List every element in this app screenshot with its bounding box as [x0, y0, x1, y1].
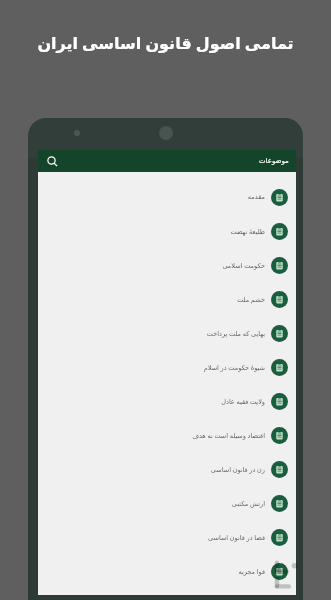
button[interactable]: زن در قانون اساسی [38, 452, 296, 486]
button[interactable]: طلیعهٔ نهضت [38, 214, 296, 248]
button[interactable]: مقدمه [38, 180, 296, 214]
staticText: بهایی که ملت پرداخت [206, 329, 265, 338]
staticText: طلیعهٔ نهضت [230, 227, 265, 236]
staticText: ولایت فقیه عادل [221, 397, 265, 406]
button[interactable]: Search [43, 152, 61, 170]
button[interactable]: خشم ملت [38, 282, 296, 316]
staticText: قضا در قانون اساسی [208, 533, 265, 542]
staticText: ارتش مکتبی [231, 499, 265, 508]
button[interactable]: ولایت فقیه عادل [38, 384, 296, 418]
staticText: زن در قانون اساسی [210, 465, 265, 474]
staticText: تمامی اصول قانون اساسی ایران [37, 32, 294, 54]
button[interactable]: شیوهٔ حکومت در اسلام [38, 350, 296, 384]
staticText: مقدمه [247, 193, 265, 201]
staticText: قوا مجریه [238, 567, 265, 576]
staticText: موضوعات [259, 157, 289, 165]
button[interactable]: اقتصاد وسیله است نه هدف [38, 418, 296, 452]
button[interactable]: ارتش مکتبی [38, 486, 296, 520]
staticText: اقتصاد وسیله است نه هدف [192, 431, 265, 440]
staticText: شیوهٔ حکومت در اسلام [203, 363, 265, 372]
staticText: خشم ملت [237, 295, 265, 304]
button[interactable]: قوا مجریه [38, 554, 296, 588]
button[interactable]: حکومت اسلامی [38, 248, 296, 282]
button[interactable]: قضا در قانون اساسی [38, 520, 296, 554]
staticText: حکومت اسلامی [222, 261, 265, 270]
button[interactable]: بهایی که ملت پرداخت [38, 316, 296, 350]
button[interactable]: موضوعات [259, 157, 296, 165]
